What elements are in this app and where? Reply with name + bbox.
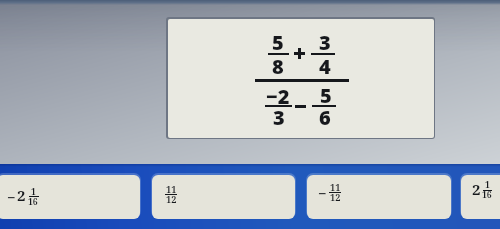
staticText: 1 [485, 179, 490, 191]
button[interactable] [307, 175, 451, 219]
button[interactable] [152, 175, 295, 219]
staticText: 5 [320, 82, 332, 109]
staticText: 16 [28, 196, 38, 208]
staticText: 5 [272, 29, 284, 56]
staticText: 3 [319, 29, 331, 56]
staticText: 11 [166, 183, 177, 196]
staticText: − [318, 183, 327, 203]
staticText: 12 [330, 191, 341, 204]
staticText: 3 [273, 104, 285, 131]
staticText: 11 [330, 181, 341, 194]
button[interactable] [461, 175, 500, 219]
button[interactable] [0, 175, 140, 219]
staticText: − [7, 187, 16, 207]
staticText: 6 [319, 104, 331, 131]
staticText: 2 [17, 185, 26, 205]
staticText: 4 [319, 53, 331, 80]
staticText: 16 [482, 189, 492, 201]
staticText: −2 [266, 83, 290, 110]
staticText: 2 [472, 179, 481, 199]
staticText: 8 [272, 53, 284, 80]
staticText: 1 [31, 186, 36, 198]
staticText: 12 [166, 193, 177, 206]
